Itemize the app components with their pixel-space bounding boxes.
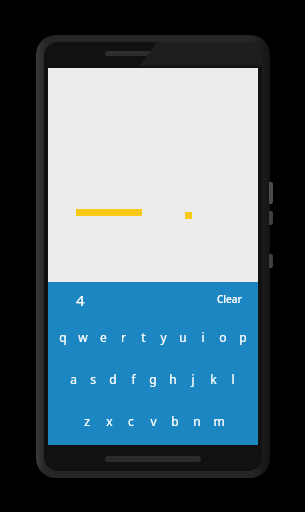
staticText: y	[160, 329, 167, 345]
button[interactable]: n	[186, 400, 208, 442]
button[interactable]: l	[223, 358, 243, 400]
staticText: x	[106, 413, 113, 429]
button[interactable]: c	[120, 400, 142, 442]
button[interactable]: i	[193, 316, 213, 358]
button[interactable]: h	[163, 358, 183, 400]
staticText: r	[121, 329, 126, 345]
button[interactable]: q	[53, 316, 73, 358]
staticText: u	[179, 329, 187, 345]
staticText: n	[193, 413, 201, 429]
staticText: w	[78, 329, 88, 345]
staticText: g	[149, 371, 157, 387]
button[interactable]: o	[213, 316, 233, 358]
button[interactable]: u	[173, 316, 193, 358]
staticText: h	[169, 371, 177, 387]
staticText: a	[70, 371, 77, 387]
staticText: q	[59, 329, 67, 345]
staticText: z	[84, 413, 90, 429]
button[interactable]: z	[76, 400, 98, 442]
staticText: f	[131, 371, 136, 387]
staticText: s	[90, 371, 96, 387]
button[interactable]: w	[73, 316, 93, 358]
staticText: j	[191, 371, 195, 387]
button[interactable]: x	[98, 400, 120, 442]
staticText: e	[100, 329, 107, 345]
staticText: 4	[76, 290, 85, 310]
button[interactable]: a	[63, 358, 83, 400]
staticText: v	[150, 413, 157, 429]
staticText: k	[210, 371, 217, 387]
button[interactable]: d	[103, 358, 123, 400]
staticText: p	[239, 329, 247, 345]
button[interactable]: b	[164, 400, 186, 442]
staticText: c	[128, 413, 134, 429]
button[interactable]: m	[208, 400, 230, 442]
staticText: m	[213, 413, 225, 429]
staticText: t	[141, 329, 146, 345]
button[interactable]: k	[203, 358, 223, 400]
staticText: l	[231, 371, 235, 387]
button[interactable]	[48, 68, 258, 282]
button[interactable]: t	[133, 316, 153, 358]
button[interactable]: v	[142, 400, 164, 442]
button[interactable]: f	[123, 358, 143, 400]
staticText: o	[219, 329, 227, 345]
staticText: Clear	[217, 292, 242, 306]
button[interactable]: e	[93, 316, 113, 358]
button[interactable]: r	[113, 316, 133, 358]
button[interactable]: y	[153, 316, 173, 358]
staticText: b	[171, 413, 179, 429]
button[interactable]: p	[233, 316, 253, 358]
staticText: i	[201, 329, 205, 345]
button[interactable]: s	[83, 358, 103, 400]
staticText: d	[109, 371, 117, 387]
button[interactable]: j	[183, 358, 203, 400]
button[interactable]: g	[143, 358, 163, 400]
button[interactable]: Clear	[213, 288, 246, 310]
